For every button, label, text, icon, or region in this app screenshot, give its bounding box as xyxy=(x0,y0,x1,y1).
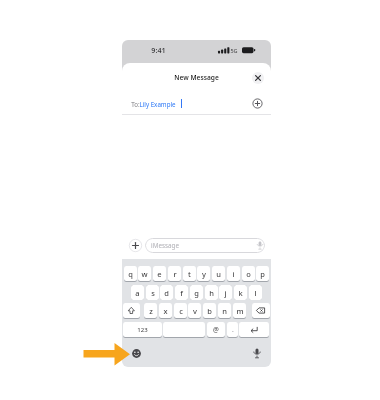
button[interactable]: iMessage xyxy=(145,238,265,253)
staticText: a xyxy=(135,288,140,298)
button[interactable] xyxy=(252,98,263,109)
staticText: n xyxy=(222,306,227,316)
button[interactable]: x xyxy=(159,303,172,318)
staticText: d xyxy=(164,288,169,298)
staticText: p xyxy=(260,269,265,279)
staticText: x xyxy=(163,306,168,316)
staticText: i xyxy=(232,269,235,279)
button[interactable]: o xyxy=(242,266,255,281)
staticText: s xyxy=(151,288,155,298)
button[interactable]: v xyxy=(188,303,201,318)
button[interactable]: f xyxy=(175,285,188,300)
button[interactable] xyxy=(163,322,205,337)
staticText: r xyxy=(173,269,177,279)
staticText: m xyxy=(236,306,244,316)
staticText: y xyxy=(202,269,206,279)
button[interactable]: d xyxy=(160,285,173,300)
staticText: w xyxy=(141,269,148,279)
staticText: 5G xyxy=(230,47,238,54)
staticText: @ xyxy=(213,325,219,334)
button[interactable]: u xyxy=(212,266,225,281)
staticText: f xyxy=(180,288,183,298)
button[interactable]: m xyxy=(233,303,246,318)
staticText: Lily Example xyxy=(139,100,176,108)
button[interactable] xyxy=(239,322,269,337)
staticText: h xyxy=(209,288,214,298)
button[interactable]: r xyxy=(168,266,181,281)
button[interactable]: q xyxy=(124,266,137,281)
staticText: k xyxy=(238,288,243,298)
button[interactable]: b xyxy=(203,303,216,318)
staticText: o xyxy=(246,269,251,279)
button[interactable]: 123 xyxy=(123,322,162,337)
button[interactable]: k xyxy=(234,285,247,300)
staticText: e xyxy=(157,269,162,279)
staticText: v xyxy=(193,306,197,316)
button[interactable]: z xyxy=(144,303,157,318)
staticText: iMessage xyxy=(151,241,179,250)
button[interactable]: @ xyxy=(207,322,225,337)
button[interactable] xyxy=(250,347,263,360)
staticText: l xyxy=(254,288,257,298)
button[interactable] xyxy=(130,347,143,360)
staticText: j xyxy=(224,288,227,298)
staticText: New Message xyxy=(174,73,219,82)
button[interactable]: t xyxy=(183,266,196,281)
button[interactable]: s xyxy=(146,285,159,300)
staticText: z xyxy=(149,306,153,316)
button[interactable]: j xyxy=(219,285,232,300)
button[interactable]: w xyxy=(138,266,151,281)
button[interactable]: c xyxy=(174,303,187,318)
button[interactable]: h xyxy=(205,285,218,300)
staticText: . xyxy=(232,325,234,334)
staticText: 9:41 xyxy=(151,45,166,55)
button[interactable]: n xyxy=(218,303,231,318)
staticText: c xyxy=(179,306,183,316)
button[interactable] xyxy=(129,239,142,252)
staticText: t xyxy=(188,269,191,279)
staticText: b xyxy=(207,306,212,316)
staticText: 123 xyxy=(137,326,148,334)
button[interactable] xyxy=(252,303,270,318)
button[interactable]: y xyxy=(197,266,210,281)
staticText: q xyxy=(128,269,133,279)
button[interactable]: . xyxy=(227,322,238,337)
staticText: To: xyxy=(131,100,140,108)
button[interactable]: l xyxy=(249,285,262,300)
button[interactable]: g xyxy=(190,285,203,300)
button[interactable] xyxy=(123,303,140,318)
button[interactable]: p xyxy=(256,266,269,281)
staticText: u xyxy=(216,269,221,279)
button[interactable]: i xyxy=(227,266,240,281)
staticText: g xyxy=(194,288,199,298)
button[interactable]: e xyxy=(153,266,166,281)
button[interactable]: a xyxy=(131,285,144,300)
button[interactable] xyxy=(251,71,265,85)
